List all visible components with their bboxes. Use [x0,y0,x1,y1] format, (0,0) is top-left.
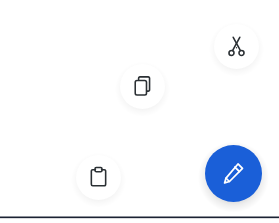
button[interactable]: Copy [120,64,165,109]
button[interactable]: Edit [205,145,262,202]
button[interactable]: Paste [76,155,121,200]
button[interactable]: Cut [214,24,259,69]
